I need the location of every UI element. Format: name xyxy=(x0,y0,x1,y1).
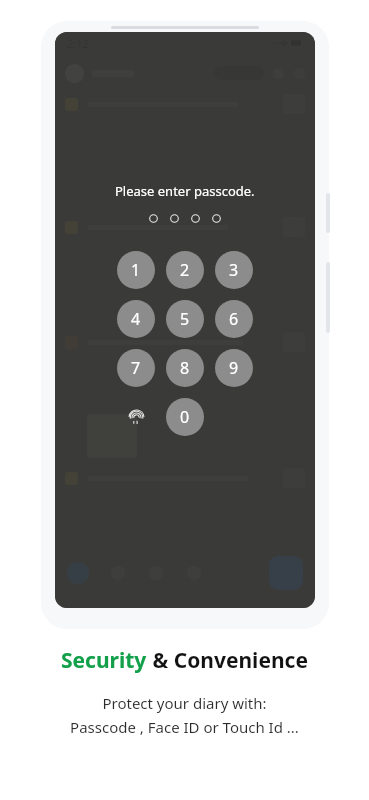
staticText: Please enter passcode. xyxy=(115,182,255,200)
staticText: 0 xyxy=(180,406,190,428)
button[interactable]: New entry xyxy=(269,556,303,590)
button[interactable]: 7 xyxy=(117,349,155,387)
button[interactable]: 9 xyxy=(215,349,253,387)
staticText: & Convenience xyxy=(147,646,308,675)
button[interactable]: 4 xyxy=(117,300,155,338)
staticText: 6 xyxy=(229,308,239,330)
staticText: Protect your diary with: xyxy=(102,693,267,713)
button[interactable]: 1 xyxy=(117,251,155,289)
button[interactable]: Home xyxy=(67,562,89,584)
button[interactable]: 8 xyxy=(166,349,204,387)
staticText: 5 xyxy=(180,308,190,330)
staticText: 3 xyxy=(229,259,239,281)
staticText: 8 xyxy=(180,357,190,379)
button[interactable]: 5 xyxy=(166,300,204,338)
button[interactable]: 6 xyxy=(215,300,253,338)
button[interactable]: 2 xyxy=(166,251,204,289)
button[interactable]: 3 xyxy=(215,251,253,289)
button[interactable]: Unlock with fingerprint xyxy=(117,398,155,436)
staticText: Passcode , Face ID or Touch Id ... xyxy=(70,717,299,737)
staticText: 9 xyxy=(229,357,239,379)
staticText: 2 xyxy=(180,259,190,281)
staticText: 4 xyxy=(131,308,141,330)
staticText: Security xyxy=(61,646,147,675)
staticText: 7 xyxy=(131,357,141,379)
staticText: 1 xyxy=(131,259,141,281)
button[interactable]: 0 xyxy=(166,398,204,436)
